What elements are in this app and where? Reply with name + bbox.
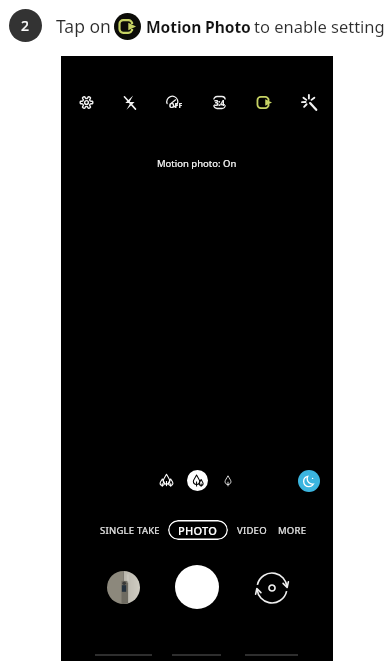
staticText: OFF [169, 101, 183, 111]
button[interactable]: Filters [298, 91, 320, 113]
staticText: PHOTO [178, 523, 218, 538]
staticText: MORE [278, 524, 307, 537]
staticText: VIDEO [237, 524, 267, 537]
staticText: Motion photo: On [157, 157, 237, 170]
staticText: 2 [21, 16, 30, 35]
button[interactable]: Wide zoom [187, 470, 208, 491]
button[interactable]: Telephoto zoom [217, 470, 238, 491]
button[interactable]: Timer off [162, 91, 184, 113]
button[interactable]: Settings [75, 91, 97, 113]
button[interactable]: Flash off [118, 91, 140, 113]
staticText: Motion Photo [146, 16, 251, 37]
staticText: SINGLE TAKE [100, 524, 160, 537]
button[interactable]: Motion photo [114, 13, 141, 40]
button[interactable]: PHOTO [168, 520, 228, 540]
staticText: Tap on [56, 14, 111, 38]
button[interactable]: Gallery [107, 571, 140, 604]
button[interactable]: Night mode [298, 470, 320, 492]
staticText: to enable setting [254, 15, 385, 37]
button[interactable]: Aspect ratio 3 by 4 [208, 91, 230, 113]
button[interactable]: 2 [9, 9, 42, 42]
button[interactable]: MORE [276, 520, 309, 540]
button[interactable]: Ultra wide zoom [156, 470, 177, 491]
button[interactable]: Motion photo [253, 91, 275, 113]
button[interactable]: Take photo [175, 565, 219, 609]
button[interactable]: VIDEO [234, 520, 269, 540]
staticText: 3:4 [214, 97, 225, 108]
button[interactable]: SINGLE TAKE [98, 520, 161, 540]
button[interactable]: Switch camera [253, 569, 291, 607]
